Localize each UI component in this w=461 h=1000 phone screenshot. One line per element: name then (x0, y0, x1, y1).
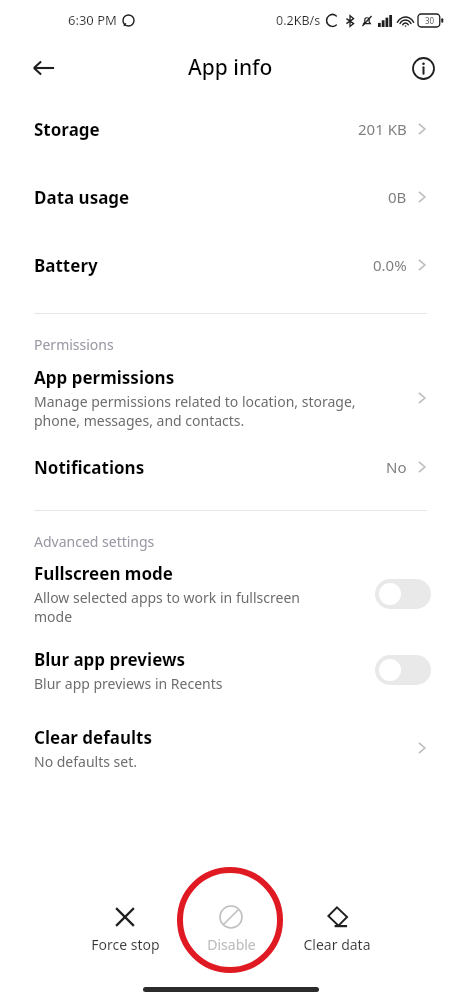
button[interactable]: Data usage (0, 163, 461, 231)
button[interactable]: Back (22, 46, 66, 90)
button[interactable]: Storage (0, 95, 461, 163)
button[interactable]: Force stop (84, 901, 166, 958)
staticText: 0B (388, 187, 407, 207)
button[interactable]: Notifications (0, 436, 461, 498)
staticText: Allow selected apps to work in fullscree… (34, 588, 300, 626)
staticText: Storage (34, 118, 100, 141)
button[interactable]: Toggle Blur app previews (375, 655, 431, 685)
staticText: Clear data (303, 935, 371, 954)
staticText: Clear defaults (34, 726, 153, 749)
staticText: Disable (207, 935, 256, 954)
staticText: Blur app previews in Recents (34, 674, 223, 693)
staticText: 201 KB (358, 119, 407, 139)
button[interactable]: App permissions (0, 360, 461, 436)
staticText: App info (188, 53, 273, 82)
staticText: Data usage (34, 186, 130, 209)
staticText: Advanced settings (34, 532, 155, 551)
button[interactable]: Clear data (296, 901, 378, 958)
staticText: Manage permissions related to location, … (34, 392, 356, 430)
staticText: Battery (34, 254, 98, 277)
staticText: Force stop (91, 935, 160, 954)
staticText: No defaults set. (34, 752, 137, 771)
staticText: 0.0% (373, 255, 407, 275)
staticText: Notifications (34, 456, 145, 479)
staticText: 6:30 PM (68, 11, 117, 29)
staticText: Permissions (34, 335, 114, 354)
staticText: Fullscreen mode (34, 562, 173, 585)
button[interactable]: Blur app previews (0, 639, 461, 701)
staticText: App permissions (34, 366, 175, 389)
button[interactable]: Clear defaults (0, 717, 461, 779)
button[interactable]: Disable (190, 901, 272, 958)
staticText: 0.2KB/s (276, 12, 321, 29)
button[interactable]: Battery (0, 231, 461, 299)
button[interactable]: App details (403, 48, 443, 88)
staticText: 30 (425, 15, 435, 26)
staticText: Blur app previews (34, 648, 186, 671)
staticText: No (386, 457, 407, 477)
button[interactable]: Toggle Fullscreen mode (375, 579, 431, 609)
button[interactable]: Fullscreen mode (0, 557, 461, 631)
